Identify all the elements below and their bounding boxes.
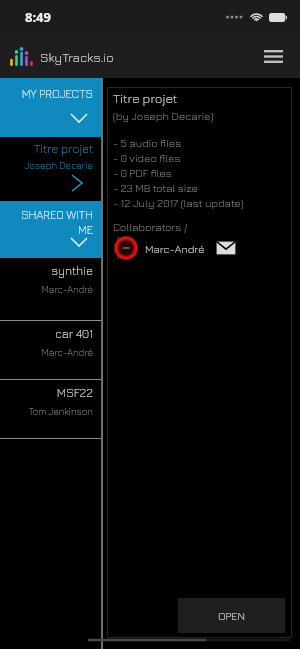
staticText: (by Joseph Decarie) bbox=[113, 109, 214, 122]
button[interactable]: SHARED WITH ME bbox=[0, 201, 101, 258]
staticText: Tom Jenkinson bbox=[28, 406, 93, 417]
staticText: MSF22 bbox=[56, 385, 93, 399]
button[interactable]: MSF22 bbox=[0, 380, 101, 438]
staticText: Marc-André bbox=[41, 284, 93, 295]
button[interactable]: synthie bbox=[0, 258, 101, 320]
staticText: - 0 PDF files bbox=[113, 166, 172, 179]
staticText: Titre projet bbox=[33, 141, 93, 155]
staticText: - 23 MB total size bbox=[113, 181, 199, 194]
staticText: synthie bbox=[51, 263, 93, 277]
staticText: SHARED WITH ME bbox=[21, 208, 93, 237]
button[interactable]: Open navigation menu bbox=[256, 39, 290, 73]
button[interactable]: Send message to Marc-André bbox=[216, 241, 236, 255]
staticText: Collaborators / bbox=[113, 220, 188, 233]
staticText: MY PROJECTS bbox=[21, 87, 93, 101]
staticText: OPEN bbox=[218, 609, 246, 622]
button[interactable]: SkyTracks.io bbox=[9, 47, 114, 66]
staticText: car 401 bbox=[55, 326, 93, 340]
staticText: SkyTracks.io bbox=[40, 49, 114, 64]
staticText: Marc-André bbox=[145, 242, 205, 255]
button[interactable]: Titre projet bbox=[0, 137, 101, 201]
button[interactable]: OPEN bbox=[178, 598, 285, 633]
staticText: 8:49 bbox=[25, 8, 51, 26]
button[interactable]: MY PROJECTS bbox=[0, 78, 101, 137]
staticText: - 0 video files bbox=[113, 151, 181, 164]
button[interactable]: car 401 bbox=[0, 321, 101, 379]
staticText: - 12 July 2017 (last update) bbox=[113, 196, 244, 209]
staticText: Marc-André bbox=[41, 347, 93, 358]
staticText: - 5 audio files bbox=[113, 136, 182, 149]
staticText: Joseph Decarie bbox=[24, 160, 93, 171]
staticText: Titre projet bbox=[113, 90, 178, 105]
